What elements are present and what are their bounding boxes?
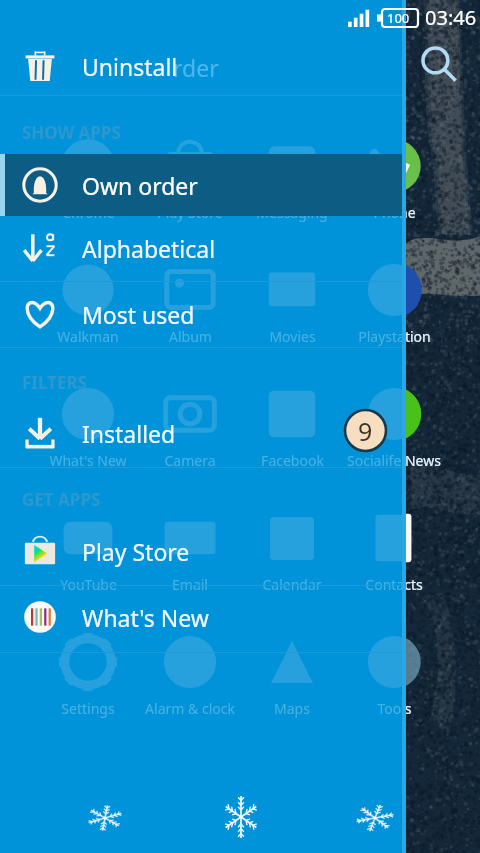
button[interactable]: Phone	[339, 202, 449, 222]
staticText: YouTube	[60, 575, 117, 594]
button[interactable]: Search	[417, 42, 463, 88]
staticText: Messaging	[256, 203, 328, 222]
staticText: Email	[172, 575, 208, 594]
staticText: Movies	[269, 327, 316, 346]
staticText: Email	[172, 575, 208, 594]
staticText: GET APPS	[22, 488, 101, 511]
button[interactable]: Walkman	[33, 326, 143, 346]
staticText: Play Store	[157, 203, 223, 222]
staticText: Socialife News	[347, 451, 406, 470]
staticText: Camera	[164, 451, 216, 470]
button[interactable]: Messaging	[237, 202, 347, 222]
staticText: Walkman	[57, 327, 119, 346]
staticText: Most used	[82, 299, 195, 330]
staticText: Contacts	[365, 575, 423, 594]
staticText: Uninstall	[82, 51, 178, 82]
button[interactable]: Calendar	[237, 574, 347, 594]
button[interactable]: Album	[135, 326, 245, 346]
staticText: What's New	[49, 451, 127, 470]
button[interactable]: YouTube	[33, 574, 143, 594]
button[interactable]: Most used	[0, 283, 406, 345]
staticText: Walkman	[57, 327, 119, 346]
staticText: Album	[169, 327, 212, 346]
staticText: 03:46	[425, 4, 477, 31]
staticText: Tools	[377, 699, 406, 718]
staticText: Maps	[274, 699, 310, 718]
button[interactable]: Facebook	[237, 450, 347, 470]
staticText: Settings	[61, 699, 115, 718]
button[interactable]: Own order	[0, 154, 406, 216]
staticText: Facebook	[261, 451, 324, 470]
button[interactable]: Maps	[237, 698, 347, 718]
staticText: Alarm & clock	[145, 699, 235, 718]
button[interactable]: Alarm & clock	[135, 698, 245, 718]
staticText: Calendar	[262, 575, 322, 594]
staticText: Playstation	[358, 327, 431, 346]
staticText: Play Store	[82, 536, 190, 567]
button[interactable]: Play Store	[0, 520, 406, 582]
staticText: Maps	[274, 699, 310, 718]
staticText: Facebook	[261, 451, 324, 470]
button[interactable]: Alphabetical	[0, 217, 406, 279]
button[interactable]: Socialife News	[339, 450, 449, 470]
staticText: SHOW APPS	[22, 121, 121, 144]
staticText: 9	[358, 414, 373, 448]
staticText: Chrome	[62, 203, 115, 222]
staticText: 100	[387, 9, 410, 27]
button[interactable]: Email	[135, 574, 245, 594]
button[interactable]: Play Store	[135, 202, 245, 222]
staticText: Own order	[82, 170, 198, 201]
staticText: Tools	[377, 699, 412, 718]
staticText: Camera	[164, 451, 216, 470]
button[interactable]: Settings	[33, 698, 143, 718]
staticText: Messaging	[256, 203, 328, 222]
button[interactable]: Tools	[339, 698, 449, 718]
staticText: What's New	[82, 602, 209, 633]
button[interactable]: Movies	[237, 326, 347, 346]
staticText: Play Store	[157, 203, 223, 222]
staticText: Settings	[61, 699, 115, 718]
staticText: Phone	[373, 203, 416, 222]
staticText: What's New	[49, 451, 127, 470]
button[interactable]: What's New	[0, 586, 406, 648]
button[interactable]: Playstation	[339, 326, 449, 346]
button[interactable]: What's New	[33, 450, 143, 470]
staticText: Calendar	[262, 575, 322, 594]
staticText: Alarm & clock	[145, 699, 235, 718]
staticText: Socialife News	[347, 451, 441, 470]
button[interactable]: Installed	[0, 402, 406, 464]
button[interactable]: Contacts	[339, 574, 449, 594]
staticText: Chrome	[62, 203, 115, 222]
button[interactable]: Camera	[135, 450, 245, 470]
staticText: FILTERS	[22, 371, 87, 394]
staticText: Phone	[373, 203, 406, 222]
staticText: Alphabetical	[82, 233, 216, 264]
staticText: Movies	[269, 327, 316, 346]
staticText: Installed	[82, 418, 176, 449]
staticText: Album	[169, 327, 212, 346]
button[interactable]: Chrome	[33, 202, 143, 222]
staticText: YouTube	[60, 575, 117, 594]
staticText: rder	[173, 52, 219, 83]
button[interactable]: Uninstall	[0, 35, 406, 97]
staticText: Contacts	[365, 575, 406, 594]
staticText: Playstation	[358, 327, 406, 346]
